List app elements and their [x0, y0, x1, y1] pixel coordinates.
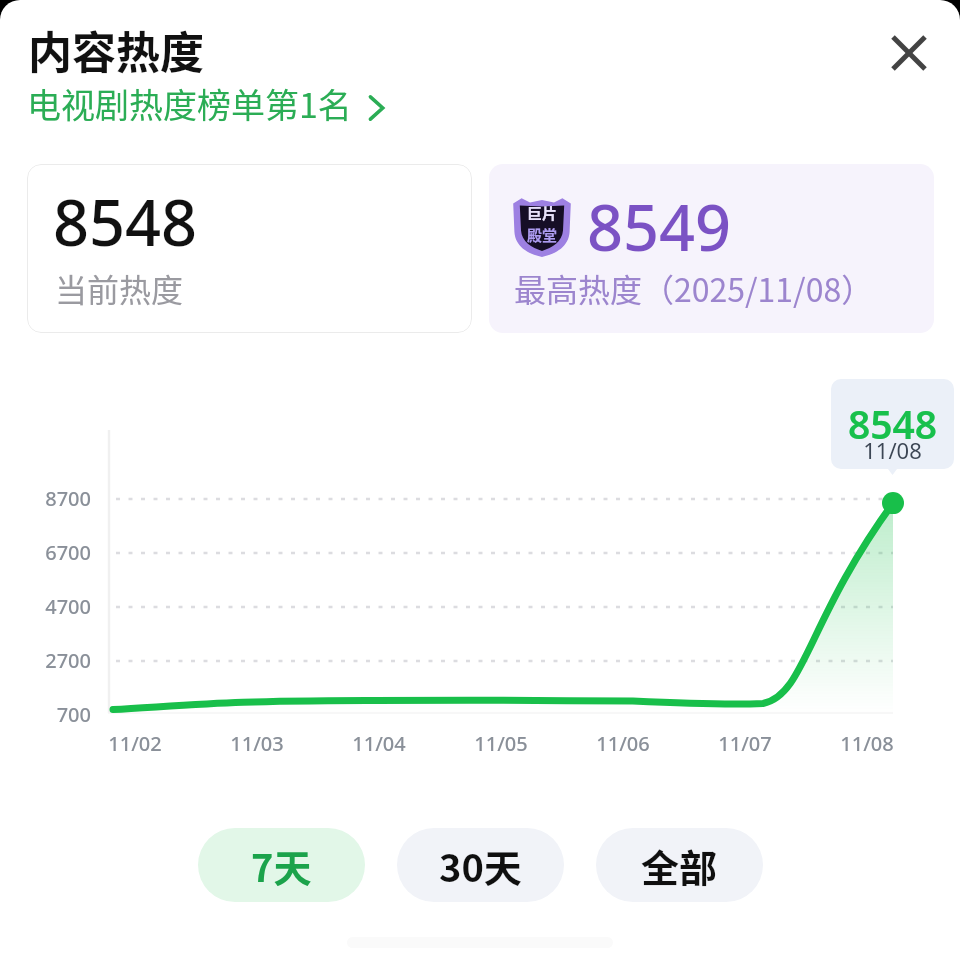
button[interactable]: 电视剧热度榜单第1名 [27, 76, 390, 131]
button[interactable]: 8548 [27, 164, 472, 333]
staticText: 巨片 [527, 202, 558, 224]
staticText: 11/03 [207, 730, 307, 757]
staticText: 内容热度 [28, 18, 204, 82]
button[interactable]: Close [876, 20, 942, 86]
staticText: 11/07 [695, 730, 795, 757]
staticText: 700 [0, 701, 91, 728]
staticText: 8548 [831, 397, 954, 450]
staticText: 最高热度（2025/11/08） [514, 265, 874, 311]
staticText: 11/08 [831, 435, 954, 465]
staticText: 全部 [641, 838, 718, 893]
staticText: 7天 [251, 838, 312, 893]
staticText: 11/05 [451, 730, 551, 757]
staticText: 2700 [0, 647, 91, 674]
staticText: 11/08 [817, 730, 917, 757]
button[interactable]: 全部 [596, 828, 763, 902]
button[interactable]: 巨片 [489, 164, 934, 333]
staticText: 当前热度 [55, 265, 184, 311]
staticText: 8548 [53, 179, 198, 265]
staticText: 4700 [0, 593, 91, 620]
staticText: 6700 [0, 539, 91, 566]
staticText: 8549 [587, 184, 732, 270]
staticText: 11/04 [329, 730, 429, 757]
staticText: 8700 [0, 485, 91, 512]
button[interactable]: 30天 [397, 828, 564, 902]
staticText: 11/06 [573, 730, 673, 757]
staticText: 11/02 [85, 730, 185, 757]
button[interactable]: 7天 [198, 828, 365, 902]
staticText: 电视剧热度榜单第1名 [27, 79, 352, 128]
staticText: 30天 [439, 838, 522, 893]
staticText: 殿堂 [527, 224, 558, 246]
